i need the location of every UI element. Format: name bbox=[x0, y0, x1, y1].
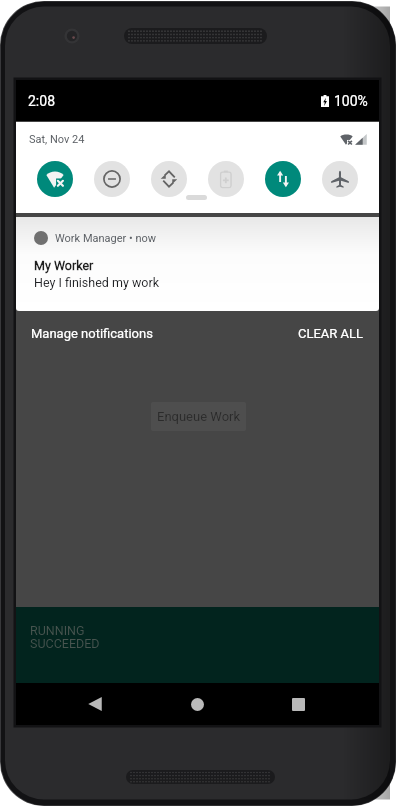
button[interactable]: Wi-Fi off bbox=[37, 161, 73, 197]
button[interactable]: Auto rotate bbox=[151, 161, 187, 197]
staticText: Work Manager • now bbox=[55, 232, 157, 245]
button[interactable]: Airplane mode bbox=[322, 161, 358, 197]
button[interactable]: Home bbox=[171, 683, 223, 725]
button[interactable]: Back bbox=[69, 683, 121, 725]
staticText: RUNNING bbox=[30, 623, 85, 638]
button[interactable]: Mobile data bbox=[265, 161, 301, 197]
staticText: 2:08 bbox=[28, 93, 55, 109]
button[interactable]: Enqueue Work bbox=[151, 402, 246, 431]
button[interactable]: CLEAR ALL bbox=[298, 326, 364, 341]
staticText: Manage notifications bbox=[31, 326, 153, 341]
staticText: 100% bbox=[334, 93, 368, 109]
button[interactable]: Recent apps bbox=[272, 683, 324, 725]
button[interactable]: Work Manager • now bbox=[16, 217, 379, 311]
staticText: SUCCEEDED bbox=[30, 636, 100, 651]
staticText: Sat, Nov 24 bbox=[29, 133, 85, 146]
button[interactable]: Battery saver bbox=[208, 161, 244, 197]
button[interactable]: Manage notifications bbox=[31, 326, 153, 341]
staticText: CLEAR ALL bbox=[298, 326, 364, 341]
staticText: Hey I finished my work bbox=[34, 275, 160, 290]
button[interactable]: Do not disturb bbox=[94, 161, 130, 197]
staticText: Enqueue Work bbox=[157, 409, 241, 424]
staticText: My Worker bbox=[34, 258, 94, 273]
